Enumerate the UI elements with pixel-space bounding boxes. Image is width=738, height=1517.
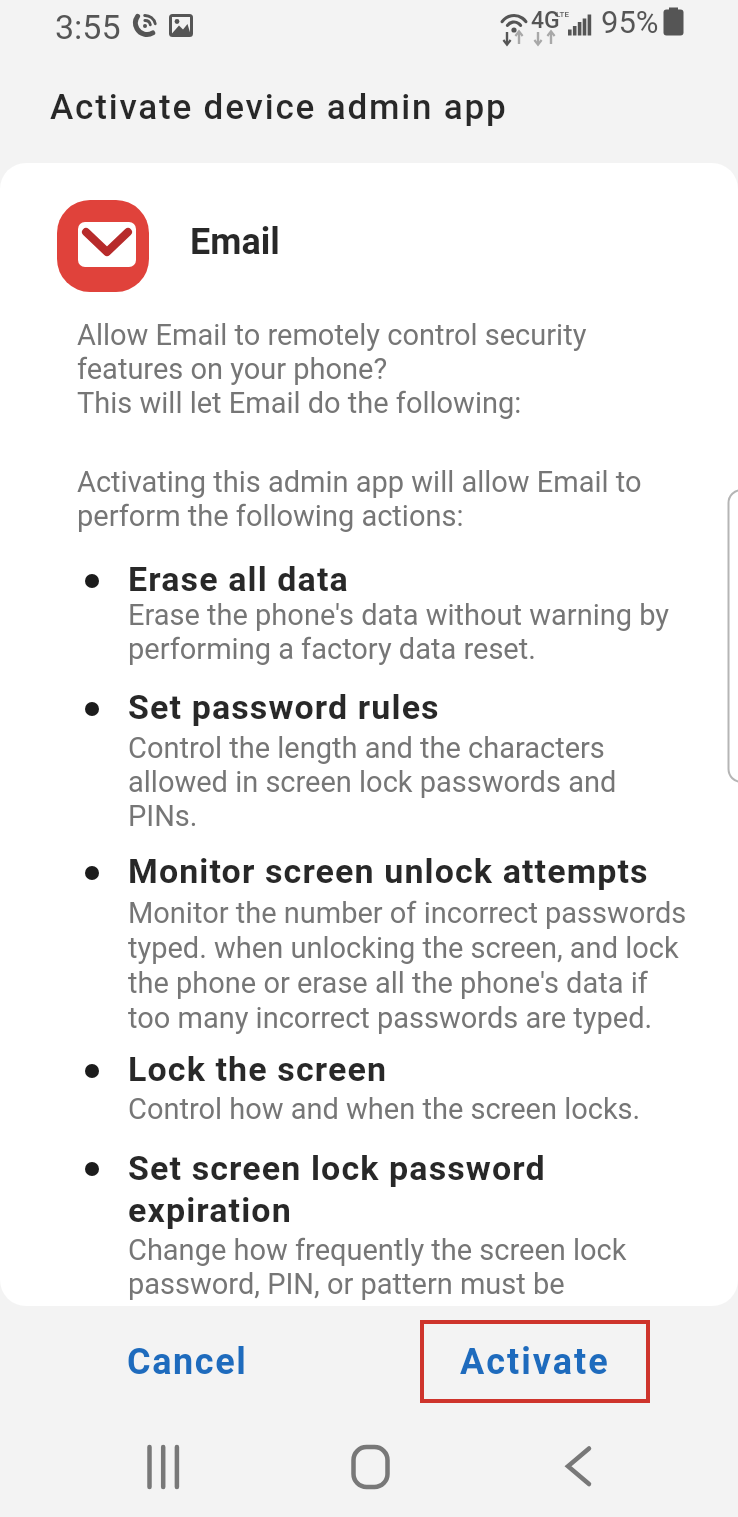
staticText: Activate xyxy=(460,1341,610,1383)
staticText: Monitor screen unlock attempts xyxy=(128,851,649,891)
button[interactable]: Activate xyxy=(420,1320,650,1403)
staticText: Control how and when the screen locks. xyxy=(128,1092,641,1126)
staticText: 4G xyxy=(531,7,560,34)
staticText: Set password rules xyxy=(128,687,440,727)
staticText: 95% xyxy=(601,4,659,40)
staticText: Email xyxy=(190,221,280,263)
button[interactable]: Cancel xyxy=(105,1322,270,1402)
staticText: Control the length and the characters al… xyxy=(128,731,617,833)
staticText: Change how frequently the screen lock pa… xyxy=(128,1233,627,1301)
staticText: LTE xyxy=(556,10,569,19)
staticText: Activate device admin app xyxy=(50,87,508,128)
staticText: Monitor the number of incorrect password… xyxy=(128,896,687,1035)
button[interactable] xyxy=(547,1436,607,1496)
staticText: 3:55 xyxy=(55,7,121,47)
staticText: Lock the screen xyxy=(128,1049,388,1089)
staticText: Erase all data xyxy=(128,559,349,599)
staticText: Erase the phone's data without warning b… xyxy=(128,598,670,666)
staticText: Set screen lock password expiration xyxy=(128,1148,546,1230)
staticText: Cancel xyxy=(127,1341,248,1383)
staticText: Allow Email to remotely control security… xyxy=(77,318,587,420)
button[interactable] xyxy=(134,1436,194,1496)
staticText: Activating this admin app will allow Ema… xyxy=(77,465,642,533)
button[interactable] xyxy=(340,1436,400,1496)
